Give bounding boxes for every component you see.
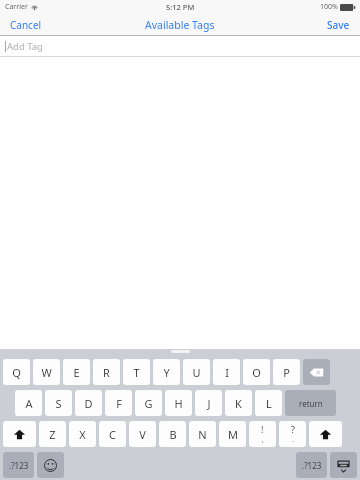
button[interactable]: R xyxy=(93,359,120,385)
staticText: D xyxy=(84,396,93,411)
staticText: Q xyxy=(12,365,21,380)
staticText: N xyxy=(198,427,207,442)
staticText: X xyxy=(79,427,86,442)
button[interactable]: ! xyxy=(249,421,276,447)
button[interactable]: O xyxy=(243,359,270,385)
staticText: F xyxy=(116,396,122,411)
staticText: return xyxy=(299,398,323,409)
staticText: A xyxy=(25,396,33,411)
button[interactable]: Hide keyboard xyxy=(330,452,357,478)
staticText: .?123 xyxy=(9,460,29,471)
staticText: 5:12 PM xyxy=(166,2,195,12)
staticText: P xyxy=(283,365,290,380)
staticText: Carrier xyxy=(5,2,28,12)
button[interactable]: K xyxy=(225,390,252,416)
staticText: , xyxy=(262,435,264,445)
staticText: M xyxy=(228,427,238,442)
button[interactable]: L xyxy=(255,390,282,416)
button[interactable]: P xyxy=(273,359,300,385)
staticText: G xyxy=(144,396,153,411)
button[interactable]: A xyxy=(15,390,42,416)
button[interactable]: .?123 xyxy=(3,452,34,478)
button[interactable]: Cancel xyxy=(0,14,52,36)
button[interactable]: Save xyxy=(317,14,360,36)
staticText: S xyxy=(55,396,62,411)
staticText: B xyxy=(169,427,177,442)
button[interactable]: D xyxy=(75,390,102,416)
staticText: Cancel xyxy=(10,18,42,32)
staticText: 100% xyxy=(320,2,338,12)
button[interactable]: F xyxy=(105,390,132,416)
staticText: H xyxy=(174,396,183,411)
button[interactable]: X xyxy=(69,421,96,447)
staticText: ! xyxy=(261,423,264,435)
button[interactable]: S xyxy=(45,390,72,416)
staticText: K xyxy=(235,396,242,411)
button[interactable]: I xyxy=(213,359,240,385)
button[interactable]: Keyboard handle xyxy=(171,350,190,353)
button[interactable]: J xyxy=(195,390,222,416)
button[interactable]: W xyxy=(33,359,60,385)
button[interactable]: Add Tag xyxy=(0,36,360,57)
staticText: Add Tag xyxy=(7,40,43,53)
staticText: Y xyxy=(163,365,170,380)
button[interactable]: G xyxy=(135,390,162,416)
staticText: Z xyxy=(49,427,56,442)
button[interactable]: ? xyxy=(279,421,306,447)
button[interactable]: B xyxy=(159,421,186,447)
staticText: R xyxy=(103,365,110,380)
button[interactable]: Z xyxy=(39,421,66,447)
button[interactable]: V xyxy=(129,421,156,447)
button[interactable]: C xyxy=(99,421,126,447)
button[interactable]: Q xyxy=(3,359,30,385)
button[interactable]: N xyxy=(189,421,216,447)
staticText: . xyxy=(292,435,294,445)
staticText: W xyxy=(41,365,52,380)
staticText: O xyxy=(252,365,261,380)
button[interactable]: Y xyxy=(153,359,180,385)
staticText: E xyxy=(73,365,80,380)
button[interactable]: M xyxy=(219,421,246,447)
button[interactable]: H xyxy=(165,390,192,416)
staticText: Save xyxy=(327,18,350,32)
staticText: I xyxy=(225,365,229,380)
button[interactable]: return xyxy=(285,390,336,416)
button[interactable]: Shift xyxy=(3,421,36,447)
staticText: T xyxy=(133,365,140,380)
button[interactable]: E xyxy=(63,359,90,385)
staticText: .?123 xyxy=(302,460,322,471)
button[interactable]: Emoji xyxy=(37,452,64,478)
button[interactable]: .?123 xyxy=(296,452,327,478)
staticText: ? xyxy=(291,423,295,435)
staticText: L xyxy=(266,396,272,411)
staticText: U xyxy=(192,365,201,380)
staticText: C xyxy=(109,427,116,442)
button[interactable]: U xyxy=(183,359,210,385)
button[interactable]: T xyxy=(123,359,150,385)
staticText: Available Tags xyxy=(145,18,215,32)
staticText: V xyxy=(139,427,146,442)
button[interactable]: Shift xyxy=(309,421,342,447)
staticText: J xyxy=(207,396,211,411)
button[interactable]: Backspace xyxy=(303,359,330,385)
